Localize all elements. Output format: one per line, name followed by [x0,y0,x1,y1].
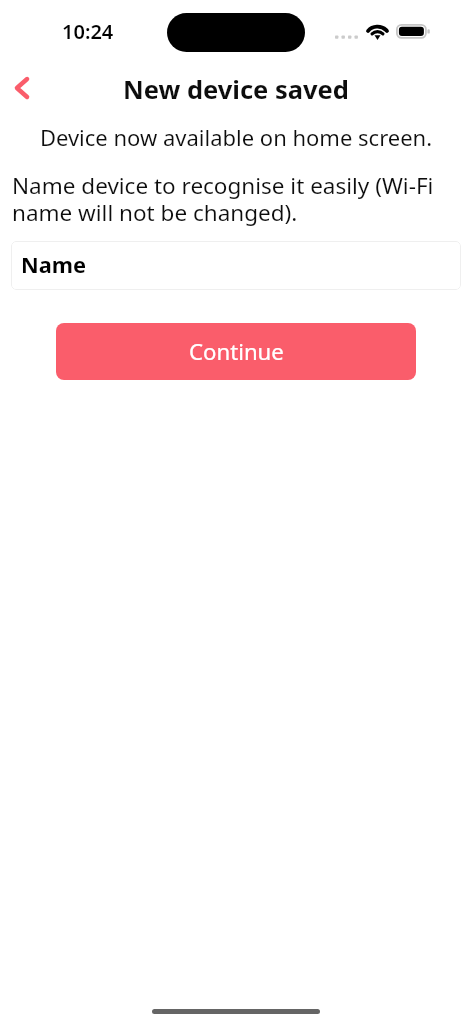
staticText: 10:24 [62,18,114,45]
button[interactable]: Continue [56,323,416,380]
button[interactable]: Name [11,241,461,290]
staticText: Device now available on home screen. [0,122,472,152]
button[interactable]: Back [0,66,44,110]
staticText: Name [21,250,87,280]
staticText: Continue [189,336,284,366]
staticText: Name device to recognise it easily (Wi-F… [12,170,461,227]
staticText: New device saved [0,72,472,107]
